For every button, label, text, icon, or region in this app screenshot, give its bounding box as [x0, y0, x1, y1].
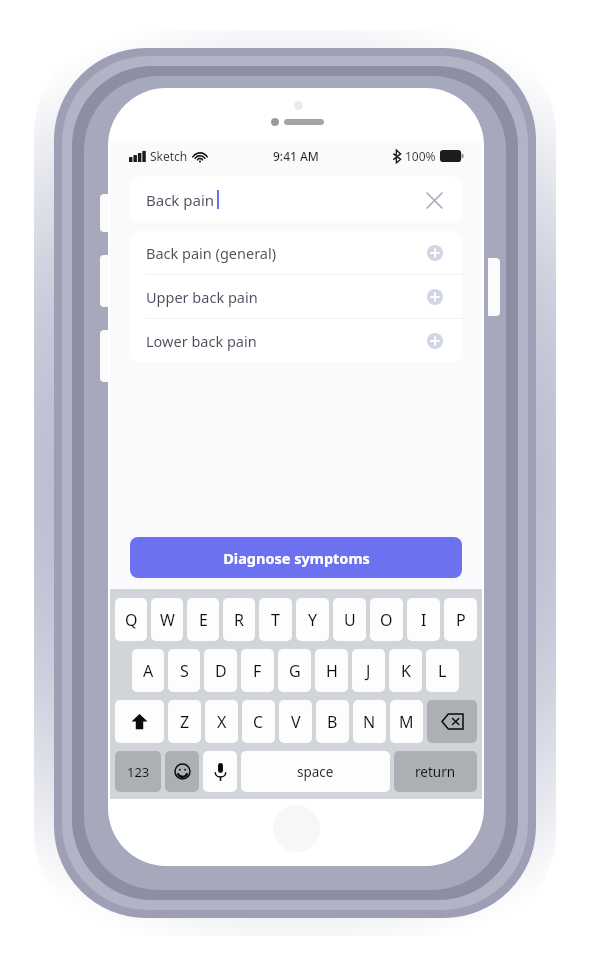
button[interactable]: H — [315, 649, 348, 692]
staticText: 9:41 AM — [273, 148, 319, 164]
button[interactable]: Add Upper back pain — [424, 286, 446, 308]
staticText: X — [217, 711, 227, 733]
button[interactable]: E — [187, 598, 219, 641]
staticText: S — [180, 660, 189, 682]
staticText: E — [199, 609, 208, 631]
button[interactable]: S — [168, 649, 200, 692]
staticText: Q — [125, 609, 138, 631]
button[interactable]: Back pain — [130, 176, 462, 223]
staticText: Lower back pain — [146, 331, 257, 351]
staticText: R — [234, 609, 244, 631]
button[interactable]: M — [390, 700, 423, 743]
staticText: M — [399, 711, 414, 733]
button[interactable]: C — [242, 700, 275, 743]
staticText: return — [415, 763, 456, 781]
button[interactable]: O — [370, 598, 403, 641]
button[interactable]: P — [444, 598, 477, 641]
staticText: Diagnose symptoms — [223, 548, 370, 568]
staticText: Back pain (general) — [146, 243, 277, 263]
button[interactable]: Q — [115, 598, 147, 641]
button[interactable]: U — [333, 598, 366, 641]
button[interactable]: D — [204, 649, 237, 692]
button[interactable]: V — [279, 700, 312, 743]
staticText: 100% — [405, 148, 436, 164]
button[interactable]: Y — [296, 598, 329, 641]
staticText: O — [380, 609, 393, 631]
staticText: I — [421, 609, 427, 631]
staticText: G — [289, 660, 301, 682]
button[interactable]: Emoji — [165, 751, 199, 792]
staticText: F — [253, 660, 262, 682]
button[interactable]: I — [407, 598, 440, 641]
button[interactable]: Diagnose symptoms — [130, 537, 462, 578]
staticText: D — [215, 660, 227, 682]
button[interactable]: Dictate — [203, 751, 237, 792]
staticText: H — [326, 660, 338, 682]
button[interactable]: 123 — [115, 751, 161, 792]
staticText: B — [327, 711, 338, 733]
button[interactable]: Clear text — [420, 186, 448, 214]
staticText: V — [291, 711, 301, 733]
staticText: Z — [180, 711, 190, 733]
button[interactable]: G — [278, 649, 311, 692]
staticText: Upper back pain — [146, 287, 258, 307]
button[interactable]: A — [132, 649, 164, 692]
button[interactable]: K — [389, 649, 422, 692]
staticText: N — [363, 711, 376, 733]
button[interactable]: Z — [168, 700, 201, 743]
staticText: P — [456, 609, 466, 631]
button[interactable]: T — [259, 598, 292, 641]
button[interactable]: X — [205, 700, 238, 743]
button[interactable]: R — [223, 598, 255, 641]
button[interactable]: Back pain (general) — [130, 231, 462, 274]
staticText: Sketch — [150, 148, 188, 164]
staticText: Y — [308, 609, 318, 631]
button[interactable]: J — [352, 649, 385, 692]
staticText: A — [143, 660, 154, 682]
button[interactable]: N — [353, 700, 386, 743]
button[interactable]: L — [426, 649, 459, 692]
staticText: space — [297, 763, 334, 781]
button[interactable]: Delete — [427, 700, 477, 743]
button[interactable]: Add Back pain (general) — [424, 242, 446, 264]
button[interactable]: F — [241, 649, 274, 692]
staticText: C — [253, 711, 264, 733]
button[interactable]: W — [151, 598, 183, 641]
button[interactable]: return — [394, 751, 477, 792]
button[interactable]: Shift — [115, 700, 164, 743]
staticText: J — [366, 660, 371, 682]
staticText: L — [438, 660, 447, 682]
button[interactable]: space — [241, 751, 390, 792]
staticText: Back pain — [146, 190, 215, 210]
staticText: W — [160, 609, 175, 631]
staticText: K — [401, 660, 411, 682]
button[interactable]: Lower back pain — [130, 319, 462, 362]
button[interactable]: Home — [273, 805, 320, 852]
staticText: T — [271, 609, 280, 631]
staticText: U — [344, 609, 356, 631]
button[interactable]: Upper back pain — [130, 275, 462, 318]
button[interactable]: Add Lower back pain — [424, 330, 446, 352]
staticText: 123 — [127, 763, 150, 781]
button[interactable]: B — [316, 700, 349, 743]
